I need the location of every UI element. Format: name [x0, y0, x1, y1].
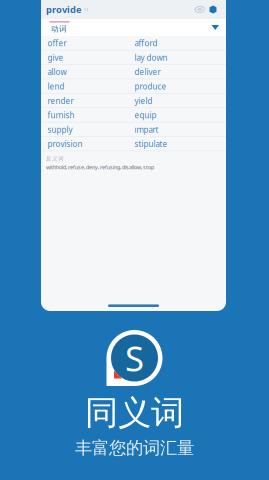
staticText: provide [46, 3, 82, 16]
button[interactable]: allow [41, 65, 226, 79]
staticText: 动词 [51, 24, 67, 34]
button[interactable]: Part of speech: verb [41, 19, 226, 36]
staticText: lend [47, 81, 64, 92]
staticText: yield [134, 95, 152, 106]
staticText: give [47, 52, 63, 63]
button[interactable]: lend [41, 79, 226, 94]
staticText: ʜ [82, 5, 88, 14]
staticText: 丰富您的词汇量 [75, 437, 194, 459]
staticText: produce [134, 81, 166, 92]
button[interactable]: give [41, 50, 226, 65]
staticText: allow [47, 67, 66, 77]
staticText: withhold, refuse, deny, refusing, disall… [46, 164, 154, 171]
button[interactable]: provision [41, 137, 226, 151]
staticText: lay down [134, 52, 167, 63]
staticText: 同义词 [85, 392, 184, 434]
button[interactable]: render [41, 94, 226, 108]
staticText: 反义词 [46, 155, 64, 162]
staticText: stipulate [134, 139, 167, 149]
button[interactable]: furnish [41, 108, 226, 122]
staticText: furnish [47, 110, 74, 120]
button[interactable]: offer [41, 36, 226, 50]
button[interactable]: Pronounce [192, 6, 207, 12]
button[interactable]: Dictionary [207, 5, 219, 13]
button[interactable]: supply [41, 122, 226, 137]
staticText: provision [47, 139, 82, 149]
staticText: offer [47, 38, 66, 48]
staticText: S [125, 335, 144, 381]
staticText: supply [47, 124, 72, 135]
staticText: render [47, 95, 73, 106]
staticText: deliver [134, 67, 160, 77]
staticText: impart [134, 124, 158, 135]
staticText: afford [134, 38, 157, 48]
staticText: equip [134, 110, 156, 120]
